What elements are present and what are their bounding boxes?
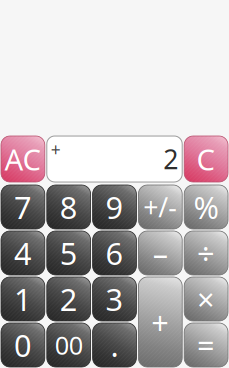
button[interactable]: 6: [93, 231, 136, 275]
staticText: 9: [105, 187, 123, 227]
button[interactable]: +/-: [138, 185, 182, 229]
staticText: ×: [197, 279, 215, 319]
staticText: 5: [60, 233, 78, 273]
button[interactable]: C: [184, 136, 228, 182]
staticText: +: [151, 302, 169, 342]
button[interactable]: 4: [1, 231, 45, 275]
button[interactable]: 0: [1, 323, 45, 367]
button[interactable]: 2: [47, 277, 91, 321]
staticText: 8: [60, 187, 78, 227]
staticText: 1: [14, 279, 32, 319]
button[interactable]: 8: [47, 185, 91, 229]
staticText: 3: [105, 279, 123, 319]
staticText: 2: [60, 279, 78, 319]
button[interactable]: –: [138, 231, 182, 275]
staticText: 0: [14, 325, 32, 365]
button[interactable]: =: [184, 323, 228, 367]
staticText: ÷: [197, 233, 215, 273]
staticText: %: [194, 187, 219, 227]
staticText: AC: [4, 139, 41, 178]
staticText: +/-: [143, 189, 177, 225]
button[interactable]: 1: [1, 277, 45, 321]
button[interactable]: ÷: [184, 231, 228, 275]
staticText: 00: [55, 328, 83, 362]
staticText: +: [51, 138, 61, 161]
staticText: =: [197, 325, 215, 365]
button[interactable]: +: [138, 277, 182, 367]
button[interactable]: AC: [1, 136, 45, 182]
staticText: C: [197, 139, 216, 178]
staticText: 6: [105, 233, 123, 273]
button[interactable]: %: [184, 185, 228, 229]
staticText: .: [110, 325, 118, 365]
button[interactable]: ×: [184, 277, 228, 321]
button[interactable]: 7: [1, 185, 45, 229]
button[interactable]: 3: [93, 277, 136, 321]
button[interactable]: 5: [47, 231, 91, 275]
staticText: 4: [14, 233, 32, 273]
button[interactable]: .: [93, 323, 136, 367]
button[interactable]: 9: [93, 185, 136, 229]
staticText: 7: [14, 187, 32, 227]
staticText: 2: [163, 141, 178, 177]
button[interactable]: 00: [47, 323, 91, 367]
staticText: –: [153, 233, 168, 273]
